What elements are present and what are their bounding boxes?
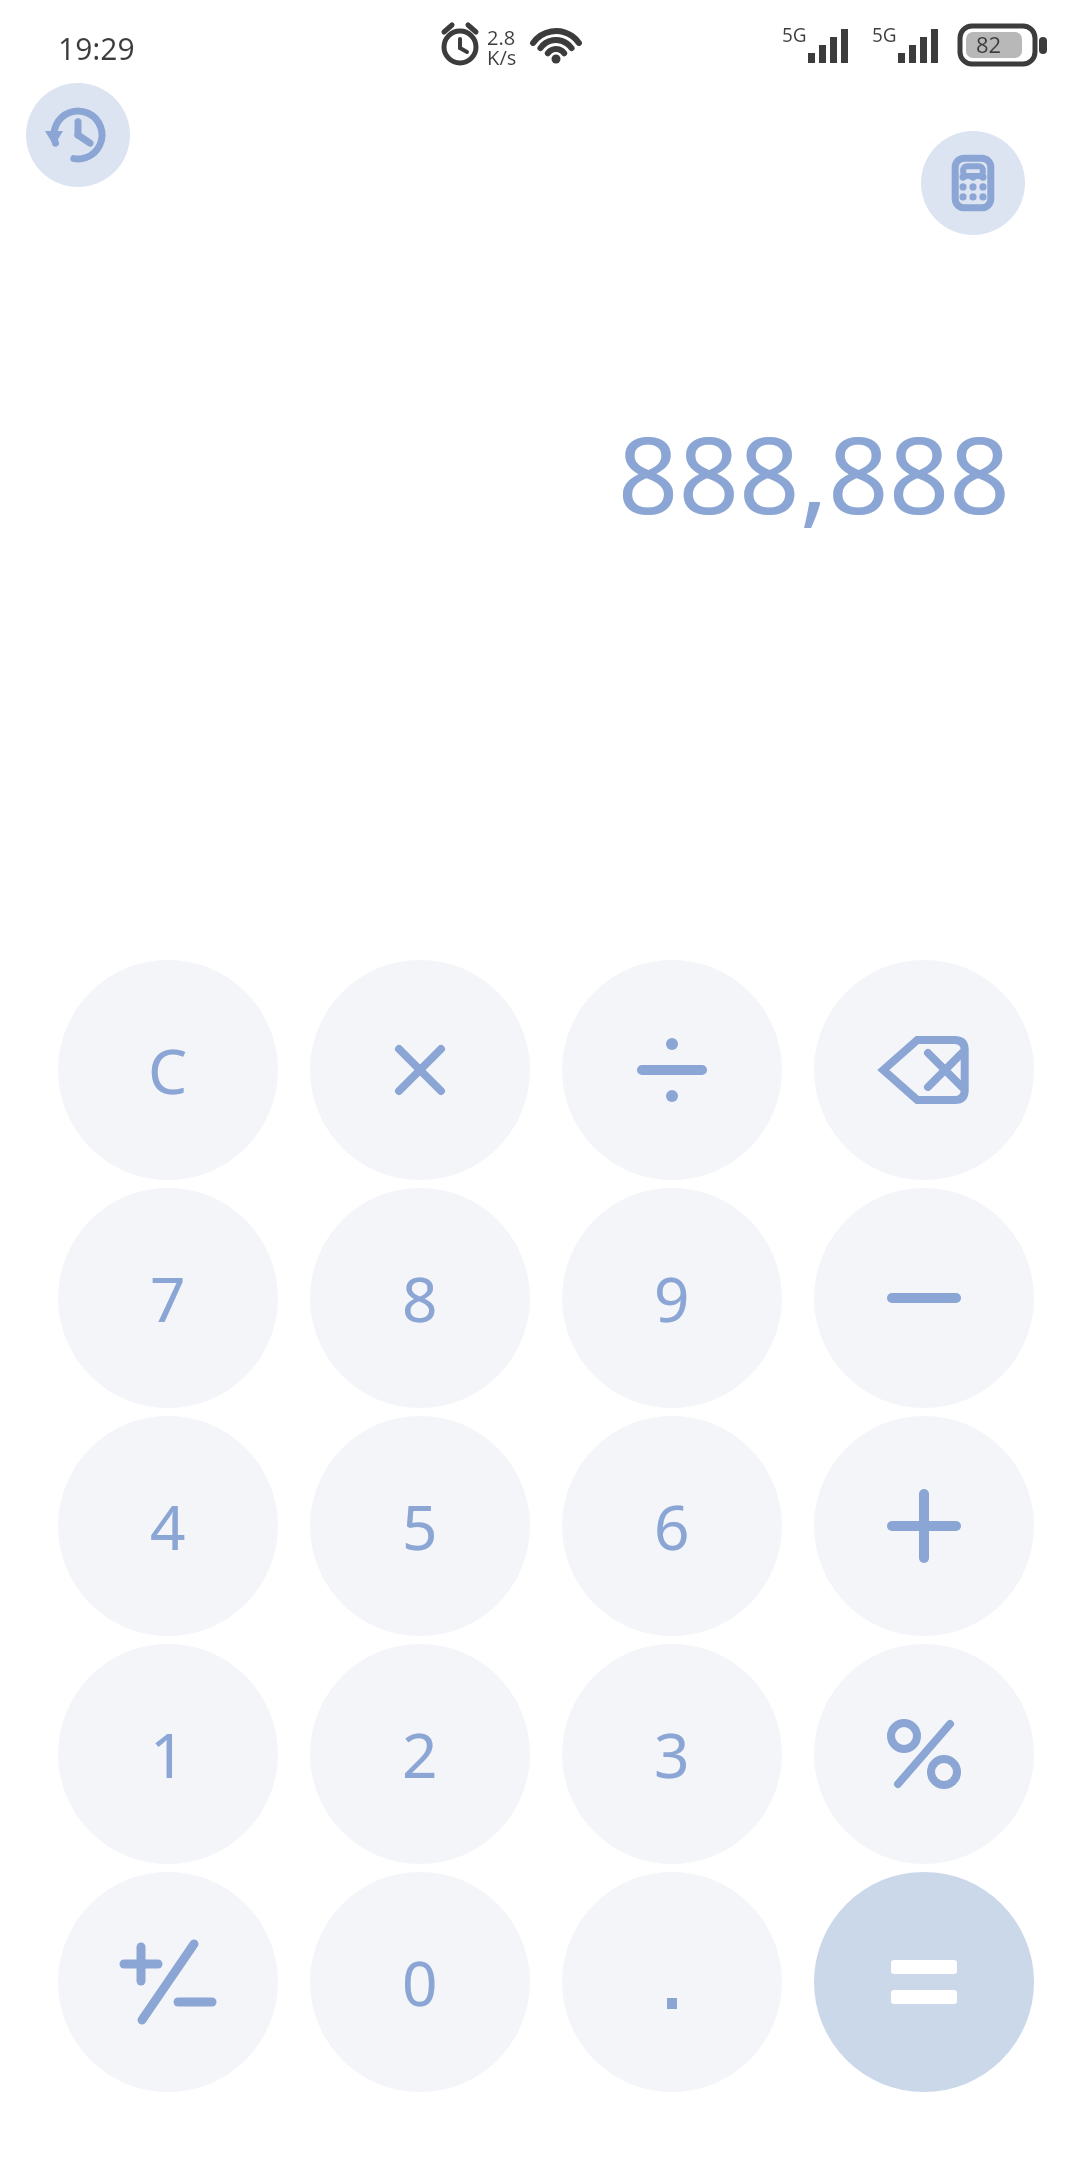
button[interactable]: C <box>58 960 278 1180</box>
staticText: K/s <box>487 44 517 71</box>
button[interactable]: Equals <box>814 1872 1034 2092</box>
staticText: 888,888 <box>617 401 1010 545</box>
staticText: 7 <box>150 1256 186 1340</box>
button[interactable]: Percent <box>814 1644 1034 1864</box>
staticText: 5G <box>782 22 807 48</box>
button[interactable]: Multiply <box>310 960 530 1180</box>
button[interactable]: 4 <box>58 1416 278 1636</box>
staticText: 82 <box>976 29 1002 59</box>
staticText: 4 <box>150 1484 186 1568</box>
button[interactable]: Add <box>814 1416 1034 1636</box>
button[interactable]: History <box>26 83 130 187</box>
staticText: 9 <box>654 1256 690 1340</box>
button[interactable]: 2 <box>310 1644 530 1864</box>
button[interactable]: 7 <box>58 1188 278 1408</box>
staticText: 19:29 <box>58 28 135 69</box>
button[interactable]: Toggle sign <box>58 1872 278 2092</box>
button[interactable]: Calculator <box>921 131 1025 235</box>
staticText: 5 <box>402 1484 438 1568</box>
staticText: 0 <box>402 1940 438 2024</box>
button[interactable]: Backspace <box>814 960 1034 1180</box>
staticText: 2 <box>402 1712 438 1796</box>
staticText: 6 <box>654 1484 690 1568</box>
staticText: 3 <box>654 1712 690 1796</box>
button[interactable]: 6 <box>562 1416 782 1636</box>
button[interactable]: 9 <box>562 1188 782 1408</box>
staticText: 1 <box>150 1712 186 1796</box>
button[interactable]: Subtract <box>814 1188 1034 1408</box>
staticText: 5G <box>872 22 897 48</box>
button[interactable]: 8 <box>310 1188 530 1408</box>
staticText: 8 <box>402 1256 438 1340</box>
button[interactable]: 0 <box>310 1872 530 2092</box>
staticText: C <box>148 1028 188 1112</box>
button[interactable]: 1 <box>58 1644 278 1864</box>
button[interactable]: Divide <box>562 960 782 1180</box>
button[interactable]: Decimal point <box>562 1872 782 2092</box>
button[interactable]: 5 <box>310 1416 530 1636</box>
button[interactable]: 3 <box>562 1644 782 1864</box>
staticText: 2.8 <box>487 24 516 51</box>
